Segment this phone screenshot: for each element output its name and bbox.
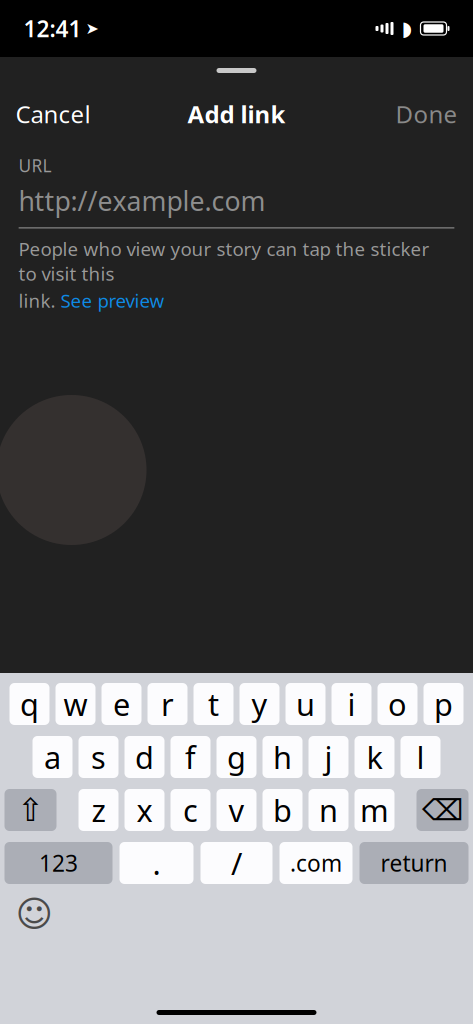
- button[interactable]: d: [124, 736, 164, 778]
- staticText: x: [136, 790, 152, 830]
- button[interactable]: Shift: [4, 789, 56, 831]
- staticText: k: [366, 737, 382, 777]
- button[interactable]: /: [200, 842, 272, 884]
- staticText: ☺: [15, 894, 53, 934]
- staticText: h: [273, 737, 292, 777]
- button[interactable]: .: [119, 842, 193, 884]
- button[interactable]: e: [101, 683, 141, 725]
- staticText: ⇧: [17, 792, 44, 828]
- button[interactable]: h: [262, 736, 302, 778]
- staticText: m: [360, 790, 389, 830]
- staticText: f: [185, 737, 196, 777]
- button[interactable]: .com: [279, 842, 352, 884]
- staticText: http://example.com: [18, 183, 265, 218]
- staticText: n: [319, 790, 338, 830]
- staticText: Add link: [187, 98, 285, 130]
- staticText: .com: [290, 848, 342, 878]
- button[interactable]: v: [216, 789, 256, 831]
- staticText: j: [324, 737, 332, 777]
- staticText: link.: [18, 288, 55, 313]
- staticText: t: [208, 684, 219, 724]
- staticText: ⌫: [422, 793, 463, 827]
- staticText: v: [228, 790, 244, 830]
- button[interactable]: f: [170, 736, 210, 778]
- button[interactable]: w: [55, 683, 95, 725]
- button[interactable]: r: [147, 683, 187, 725]
- staticText: ◗: [401, 17, 412, 40]
- button[interactable]: j: [308, 736, 348, 778]
- staticText: p: [434, 684, 453, 724]
- staticText: return: [380, 848, 447, 878]
- button[interactable]: See preview: [60, 288, 164, 313]
- staticText: o: [388, 684, 407, 724]
- button[interactable]: a: [32, 736, 72, 778]
- staticText: r: [161, 684, 174, 724]
- staticText: i: [347, 684, 355, 724]
- button[interactable]: o: [377, 683, 417, 725]
- button[interactable]: s: [78, 736, 118, 778]
- button[interactable]: t: [193, 683, 233, 725]
- staticText: z: [91, 790, 105, 830]
- button[interactable]: Cancel: [1, 88, 104, 140]
- staticText: ➤: [85, 19, 98, 38]
- button[interactable]: return: [359, 842, 468, 884]
- staticText: g: [227, 737, 246, 777]
- button[interactable]: n: [308, 789, 348, 831]
- staticText: c: [183, 790, 198, 830]
- staticText: u: [296, 684, 315, 724]
- staticText: .: [152, 843, 160, 883]
- staticText: Cancel: [15, 98, 90, 130]
- button[interactable]: k: [354, 736, 394, 778]
- button[interactable]: q: [9, 683, 49, 725]
- button[interactable]: 123: [4, 842, 112, 884]
- button[interactable]: u: [285, 683, 325, 725]
- button[interactable]: y: [239, 683, 279, 725]
- button[interactable]: b: [262, 789, 302, 831]
- button[interactable]: Emoji: [12, 897, 56, 931]
- staticText: URL: [18, 154, 51, 177]
- button[interactable]: Done: [381, 88, 471, 140]
- staticText: People who view your story can tap the s…: [18, 236, 429, 286]
- staticText: See preview: [60, 288, 164, 313]
- button[interactable]: p: [423, 683, 463, 725]
- staticText: q: [20, 684, 39, 724]
- staticText: l: [416, 737, 424, 777]
- button[interactable]: x: [124, 789, 164, 831]
- button[interactable]: l: [400, 736, 440, 778]
- button[interactable]: m: [354, 789, 394, 831]
- button[interactable]: c: [170, 789, 210, 831]
- button[interactable]: i: [331, 683, 371, 725]
- staticText: 12:41: [23, 13, 81, 43]
- staticText: w: [63, 684, 87, 724]
- button[interactable]: z: [78, 789, 118, 831]
- staticText: a: [44, 737, 61, 777]
- staticText: 123: [39, 848, 78, 878]
- staticText: s: [91, 737, 106, 777]
- button[interactable]: g: [216, 736, 256, 778]
- staticText: d: [135, 737, 154, 777]
- staticText: /: [231, 843, 242, 883]
- staticText: Done: [395, 98, 457, 130]
- button[interactable]: Delete: [416, 789, 468, 831]
- staticText: y: [251, 684, 267, 724]
- staticText: b: [273, 790, 292, 830]
- staticText: e: [113, 684, 130, 724]
